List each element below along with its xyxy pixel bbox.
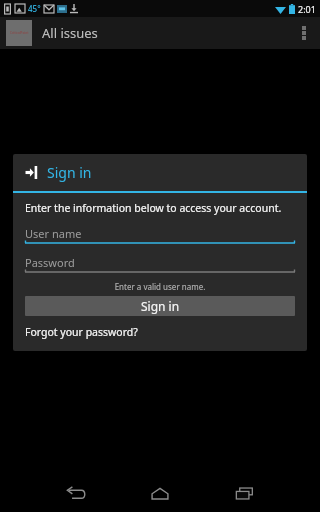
staticText: 2:01 bbox=[298, 3, 316, 15]
staticText: Password bbox=[25, 255, 75, 270]
staticText: CriticalPoint bbox=[10, 31, 29, 35]
button[interactable]: User name bbox=[25, 225, 295, 246]
staticText: 45° bbox=[28, 3, 41, 14]
other: Sign in bbox=[25, 166, 38, 179]
button[interactable]: Back bbox=[47, 474, 105, 512]
button[interactable]: Recent apps bbox=[215, 474, 273, 512]
staticText: Sign in bbox=[141, 298, 180, 314]
button[interactable]: Password bbox=[25, 254, 295, 275]
button[interactable]: More options bbox=[288, 17, 320, 49]
staticText: All issues bbox=[42, 24, 98, 42]
button[interactable]: App icon, navigate up bbox=[6, 20, 32, 46]
staticText: Sign in bbox=[47, 163, 92, 182]
button[interactable]: Forgot your password? bbox=[25, 325, 138, 339]
staticText: Forgot your password? bbox=[25, 325, 138, 339]
button[interactable]: Sign in bbox=[25, 296, 295, 316]
staticText: Enter the information below to access yo… bbox=[25, 201, 282, 215]
staticText: Enter a valid user name. bbox=[25, 281, 295, 292]
staticText: User name bbox=[25, 226, 82, 241]
button[interactable]: Home bbox=[131, 474, 189, 512]
